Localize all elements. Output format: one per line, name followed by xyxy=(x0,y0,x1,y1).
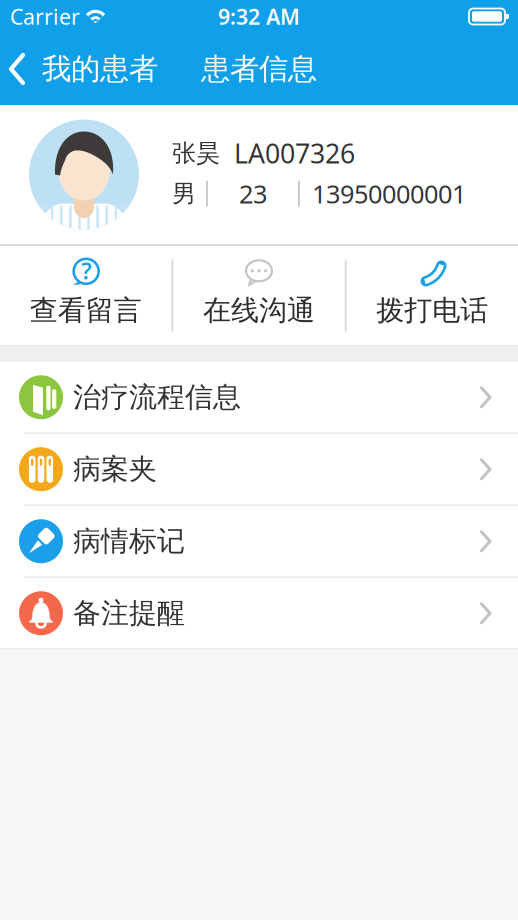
staticText: 病案夹 xyxy=(73,452,157,486)
staticText: 治疗流程信息 xyxy=(73,380,241,414)
button[interactable]: 拨打电话 xyxy=(347,260,518,331)
button[interactable]: 备注提醒 xyxy=(0,578,518,648)
staticText: Carrier xyxy=(10,2,80,31)
staticText: 13950000001 xyxy=(312,177,466,210)
staticText: 在线沟通 xyxy=(203,293,315,328)
staticText: 备注提醒 xyxy=(73,596,185,630)
staticText: 患者信息 xyxy=(201,51,317,87)
staticText: 9:32 AM xyxy=(218,2,300,31)
staticText: 我的患者 xyxy=(42,51,158,87)
staticText: 23 xyxy=(239,177,267,210)
staticText: LA007326 xyxy=(234,135,355,171)
staticText: 拨打电话 xyxy=(376,293,488,328)
staticText: 男 xyxy=(172,179,196,208)
button[interactable]: 病情标记 xyxy=(0,506,518,576)
staticText: 查看留言 xyxy=(30,293,142,328)
staticText: ? xyxy=(81,256,91,286)
button[interactable]: 病案夹 xyxy=(0,434,518,504)
button[interactable]: 在线沟通 xyxy=(173,260,345,331)
button[interactable]: ? xyxy=(0,260,171,331)
button[interactable]: 治疗流程信息 xyxy=(0,362,518,432)
staticText: 病情标记 xyxy=(73,524,185,558)
staticText: 张昊 xyxy=(172,138,220,168)
button[interactable]: 我的患者 xyxy=(0,51,158,87)
